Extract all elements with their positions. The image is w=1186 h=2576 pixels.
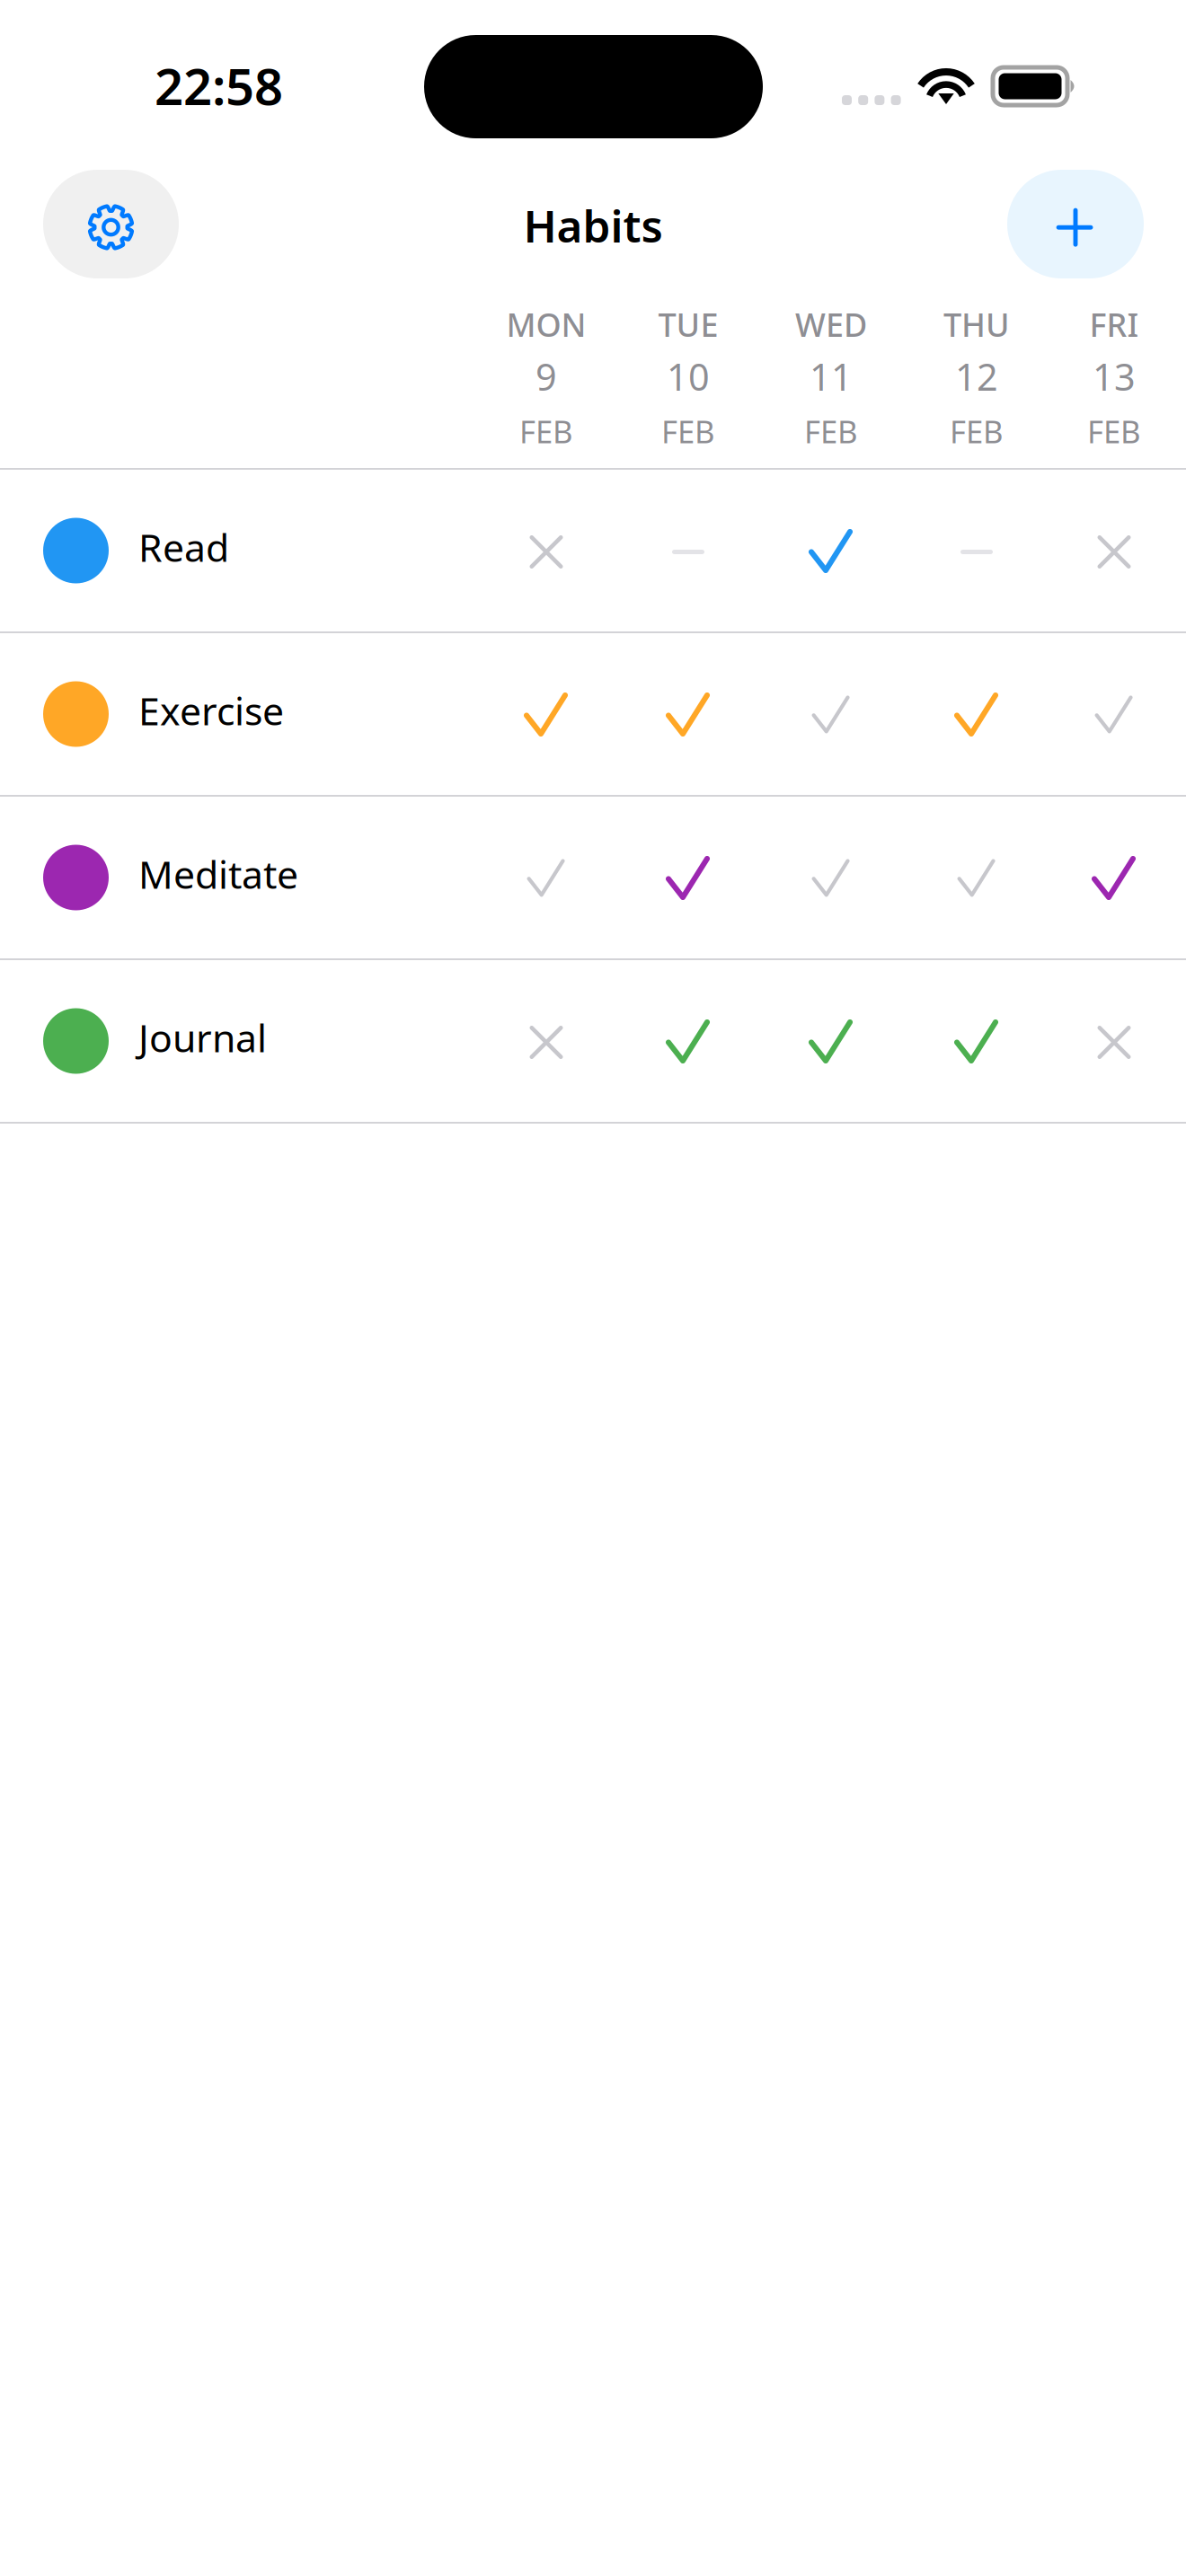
staticText: WED — [795, 303, 867, 346]
button[interactable]: Journal, Tuesday 10 February — [648, 1001, 729, 1081]
staticText: FEB — [950, 410, 1004, 452]
staticText: MON — [506, 303, 586, 346]
staticText: Habits — [523, 196, 663, 255]
button[interactable]: Read, Tuesday 10 February — [648, 510, 729, 591]
button[interactable]: Exercise, Friday 13 February — [1074, 674, 1155, 754]
button[interactable]: Exercise, Monday 9 February — [506, 674, 587, 754]
button[interactable]: Journal, Thursday 12 February — [936, 1001, 1017, 1081]
button[interactable]: Settings — [43, 170, 179, 278]
staticText: TUE — [658, 303, 718, 346]
button[interactable]: Exercise — [0, 633, 467, 795]
button[interactable]: Exercise, Tuesday 10 February — [648, 674, 729, 754]
staticText: FEB — [804, 410, 858, 452]
staticText: 10 — [667, 352, 710, 401]
staticText: THU — [943, 303, 1010, 346]
button[interactable]: Read, Friday 13 February — [1074, 510, 1155, 591]
button[interactable]: Meditate, Monday 9 February — [506, 837, 587, 918]
button[interactable]: Read — [0, 470, 467, 631]
staticText: 13 — [1093, 352, 1136, 401]
button[interactable]: Exercise, Wednesday 11 February — [791, 674, 872, 754]
button[interactable]: Meditate — [0, 797, 467, 958]
button[interactable]: Read, Thursday 12 February — [936, 510, 1017, 591]
button[interactable]: Meditate, Friday 13 February — [1074, 837, 1155, 918]
staticText: FEB — [1087, 410, 1141, 452]
button[interactable]: Journal, Wednesday 11 February — [791, 1001, 872, 1081]
button[interactable]: Journal — [0, 960, 467, 1122]
staticText: Read — [138, 522, 229, 573]
staticText: 9 — [535, 352, 557, 401]
button[interactable]: Meditate, Tuesday 10 February — [648, 837, 729, 918]
button[interactable]: Journal, Monday 9 February — [506, 1001, 587, 1081]
staticText: Journal — [138, 1012, 267, 1063]
button[interactable]: Meditate, Wednesday 11 February — [791, 837, 872, 918]
button[interactable]: Read, Wednesday 11 February — [791, 510, 872, 591]
button[interactable]: Meditate, Thursday 12 February — [936, 837, 1017, 918]
button[interactable]: Add habit — [1007, 170, 1144, 278]
staticText: FEB — [519, 410, 573, 452]
staticText: 11 — [810, 352, 853, 401]
button[interactable]: Journal, Friday 13 February — [1074, 1001, 1155, 1081]
button[interactable]: Read, Monday 9 February — [506, 510, 587, 591]
staticText: FRI — [1089, 303, 1139, 346]
staticText: 12 — [955, 352, 998, 401]
staticText: FEB — [661, 410, 715, 452]
staticText: Meditate — [138, 849, 298, 899]
button[interactable]: Exercise, Thursday 12 February — [936, 674, 1017, 754]
staticText: Exercise — [138, 685, 284, 736]
staticText: 22:58 — [155, 52, 283, 119]
